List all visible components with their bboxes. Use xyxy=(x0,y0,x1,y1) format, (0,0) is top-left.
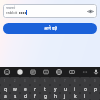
staticText: y xyxy=(54,86,57,93)
staticText: 9 xyxy=(84,79,86,83)
staticText: r xyxy=(34,86,36,93)
button[interactable]: 9 xyxy=(80,77,90,85)
button[interactable]: k xyxy=(70,93,80,100)
staticText: 1 xyxy=(4,79,6,83)
button[interactable]: 4 xyxy=(30,77,40,85)
button[interactable]: Voice input xyxy=(91,67,100,77)
button[interactable]: 5 xyxy=(40,77,50,85)
staticText: 3 xyxy=(24,79,26,83)
button[interactable]: a xyxy=(0,93,10,100)
button[interactable]: More options xyxy=(78,67,91,77)
button[interactable]: Theme xyxy=(39,67,52,77)
staticText: h xyxy=(54,93,57,100)
staticText: a xyxy=(4,93,7,100)
button[interactable]: r xyxy=(30,85,40,93)
button[interactable]: d xyxy=(20,93,30,100)
button[interactable]: 6 xyxy=(50,77,60,85)
staticText: l xyxy=(84,93,86,100)
button[interactable]: Stickers xyxy=(13,67,26,77)
button[interactable]: u xyxy=(60,85,70,93)
staticText: g xyxy=(44,93,47,100)
button[interactable]: e xyxy=(20,85,30,93)
button[interactable]: w xyxy=(10,85,20,93)
button[interactable]: g xyxy=(40,93,50,100)
button[interactable]: o xyxy=(80,85,90,93)
staticText: q xyxy=(4,86,7,93)
button[interactable]: Translate xyxy=(52,67,65,77)
staticText: पासवर्ड xyxy=(6,5,16,10)
button[interactable]: y xyxy=(50,85,60,93)
button[interactable]: j xyxy=(60,93,70,100)
button[interactable]: f xyxy=(30,93,40,100)
button[interactable]: 8 xyxy=(70,77,80,85)
button[interactable]: आगे बढ़ें xyxy=(3,23,97,34)
button[interactable]: p xyxy=(90,85,100,93)
staticText: k xyxy=(74,93,77,100)
staticText: p xyxy=(94,86,97,93)
button[interactable]: Emoji xyxy=(0,67,13,77)
button[interactable]: 1 xyxy=(0,77,10,85)
button[interactable]: l xyxy=(80,93,90,100)
button[interactable]: पासवर्ड xyxy=(3,4,97,18)
button[interactable]: h xyxy=(50,93,60,100)
staticText: w xyxy=(13,86,17,93)
staticText: 4 xyxy=(34,79,36,83)
staticText: i xyxy=(74,86,76,93)
staticText: u xyxy=(64,86,67,93)
button[interactable]: 7 xyxy=(60,77,70,85)
button[interactable]: s xyxy=(10,93,20,100)
staticText: s xyxy=(14,93,17,100)
button[interactable]: Clipboard xyxy=(26,67,39,77)
staticText: j xyxy=(64,93,66,100)
button[interactable]: Text editing xyxy=(65,67,78,77)
staticText: f xyxy=(34,93,36,100)
staticText: 8 xyxy=(74,79,76,83)
button[interactable]: Show password xyxy=(86,7,94,15)
staticText: t xyxy=(44,86,46,93)
button[interactable]: 0 xyxy=(90,77,100,85)
staticText: rabbit xyxy=(6,10,18,15)
button[interactable]: 3 xyxy=(20,77,30,85)
staticText: 5 xyxy=(44,79,46,83)
staticText: e xyxy=(24,86,27,93)
button[interactable]: t xyxy=(40,85,50,93)
staticText: 0 xyxy=(94,79,96,83)
button[interactable]: q xyxy=(0,85,10,93)
staticText: o xyxy=(84,86,87,93)
staticText: 2 xyxy=(14,79,16,83)
staticText: 7 xyxy=(64,79,66,83)
staticText: आगे बढ़ें xyxy=(44,26,57,32)
button[interactable]: i xyxy=(70,85,80,93)
staticText: 6 xyxy=(54,79,56,83)
button[interactable]: 2 xyxy=(10,77,20,85)
staticText: d xyxy=(24,93,27,100)
